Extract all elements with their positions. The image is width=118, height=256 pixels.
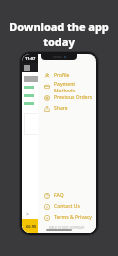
button[interactable]: Share (38, 103, 96, 114)
button[interactable]: Terms & Privacy (38, 212, 96, 223)
button[interactable]: Profile (38, 70, 96, 81)
button[interactable]: £6.95 (22, 219, 40, 233)
button[interactable]: Previous Orders (38, 92, 96, 103)
staticText: Contact Us (54, 203, 80, 210)
staticText: Download the app today (0, 19, 118, 49)
staticText: > (26, 211, 29, 218)
staticText: Terms & Privacy (54, 214, 93, 221)
button[interactable]: FAQ (38, 190, 96, 201)
staticText: FAQ (54, 192, 64, 199)
staticText: Profile (54, 72, 70, 79)
staticText: Share (54, 105, 68, 112)
staticText: BUILD 1.0 (2021) COPYRIGHT (49, 226, 85, 230)
staticText: Payment Methods (54, 81, 96, 92)
button[interactable]: Payment Methods (38, 81, 96, 92)
staticText: £6.95 (26, 224, 37, 229)
staticText: 11:07 (25, 56, 36, 61)
button[interactable]: Contact Us (38, 201, 96, 212)
staticText: Previous Orders (54, 94, 93, 101)
